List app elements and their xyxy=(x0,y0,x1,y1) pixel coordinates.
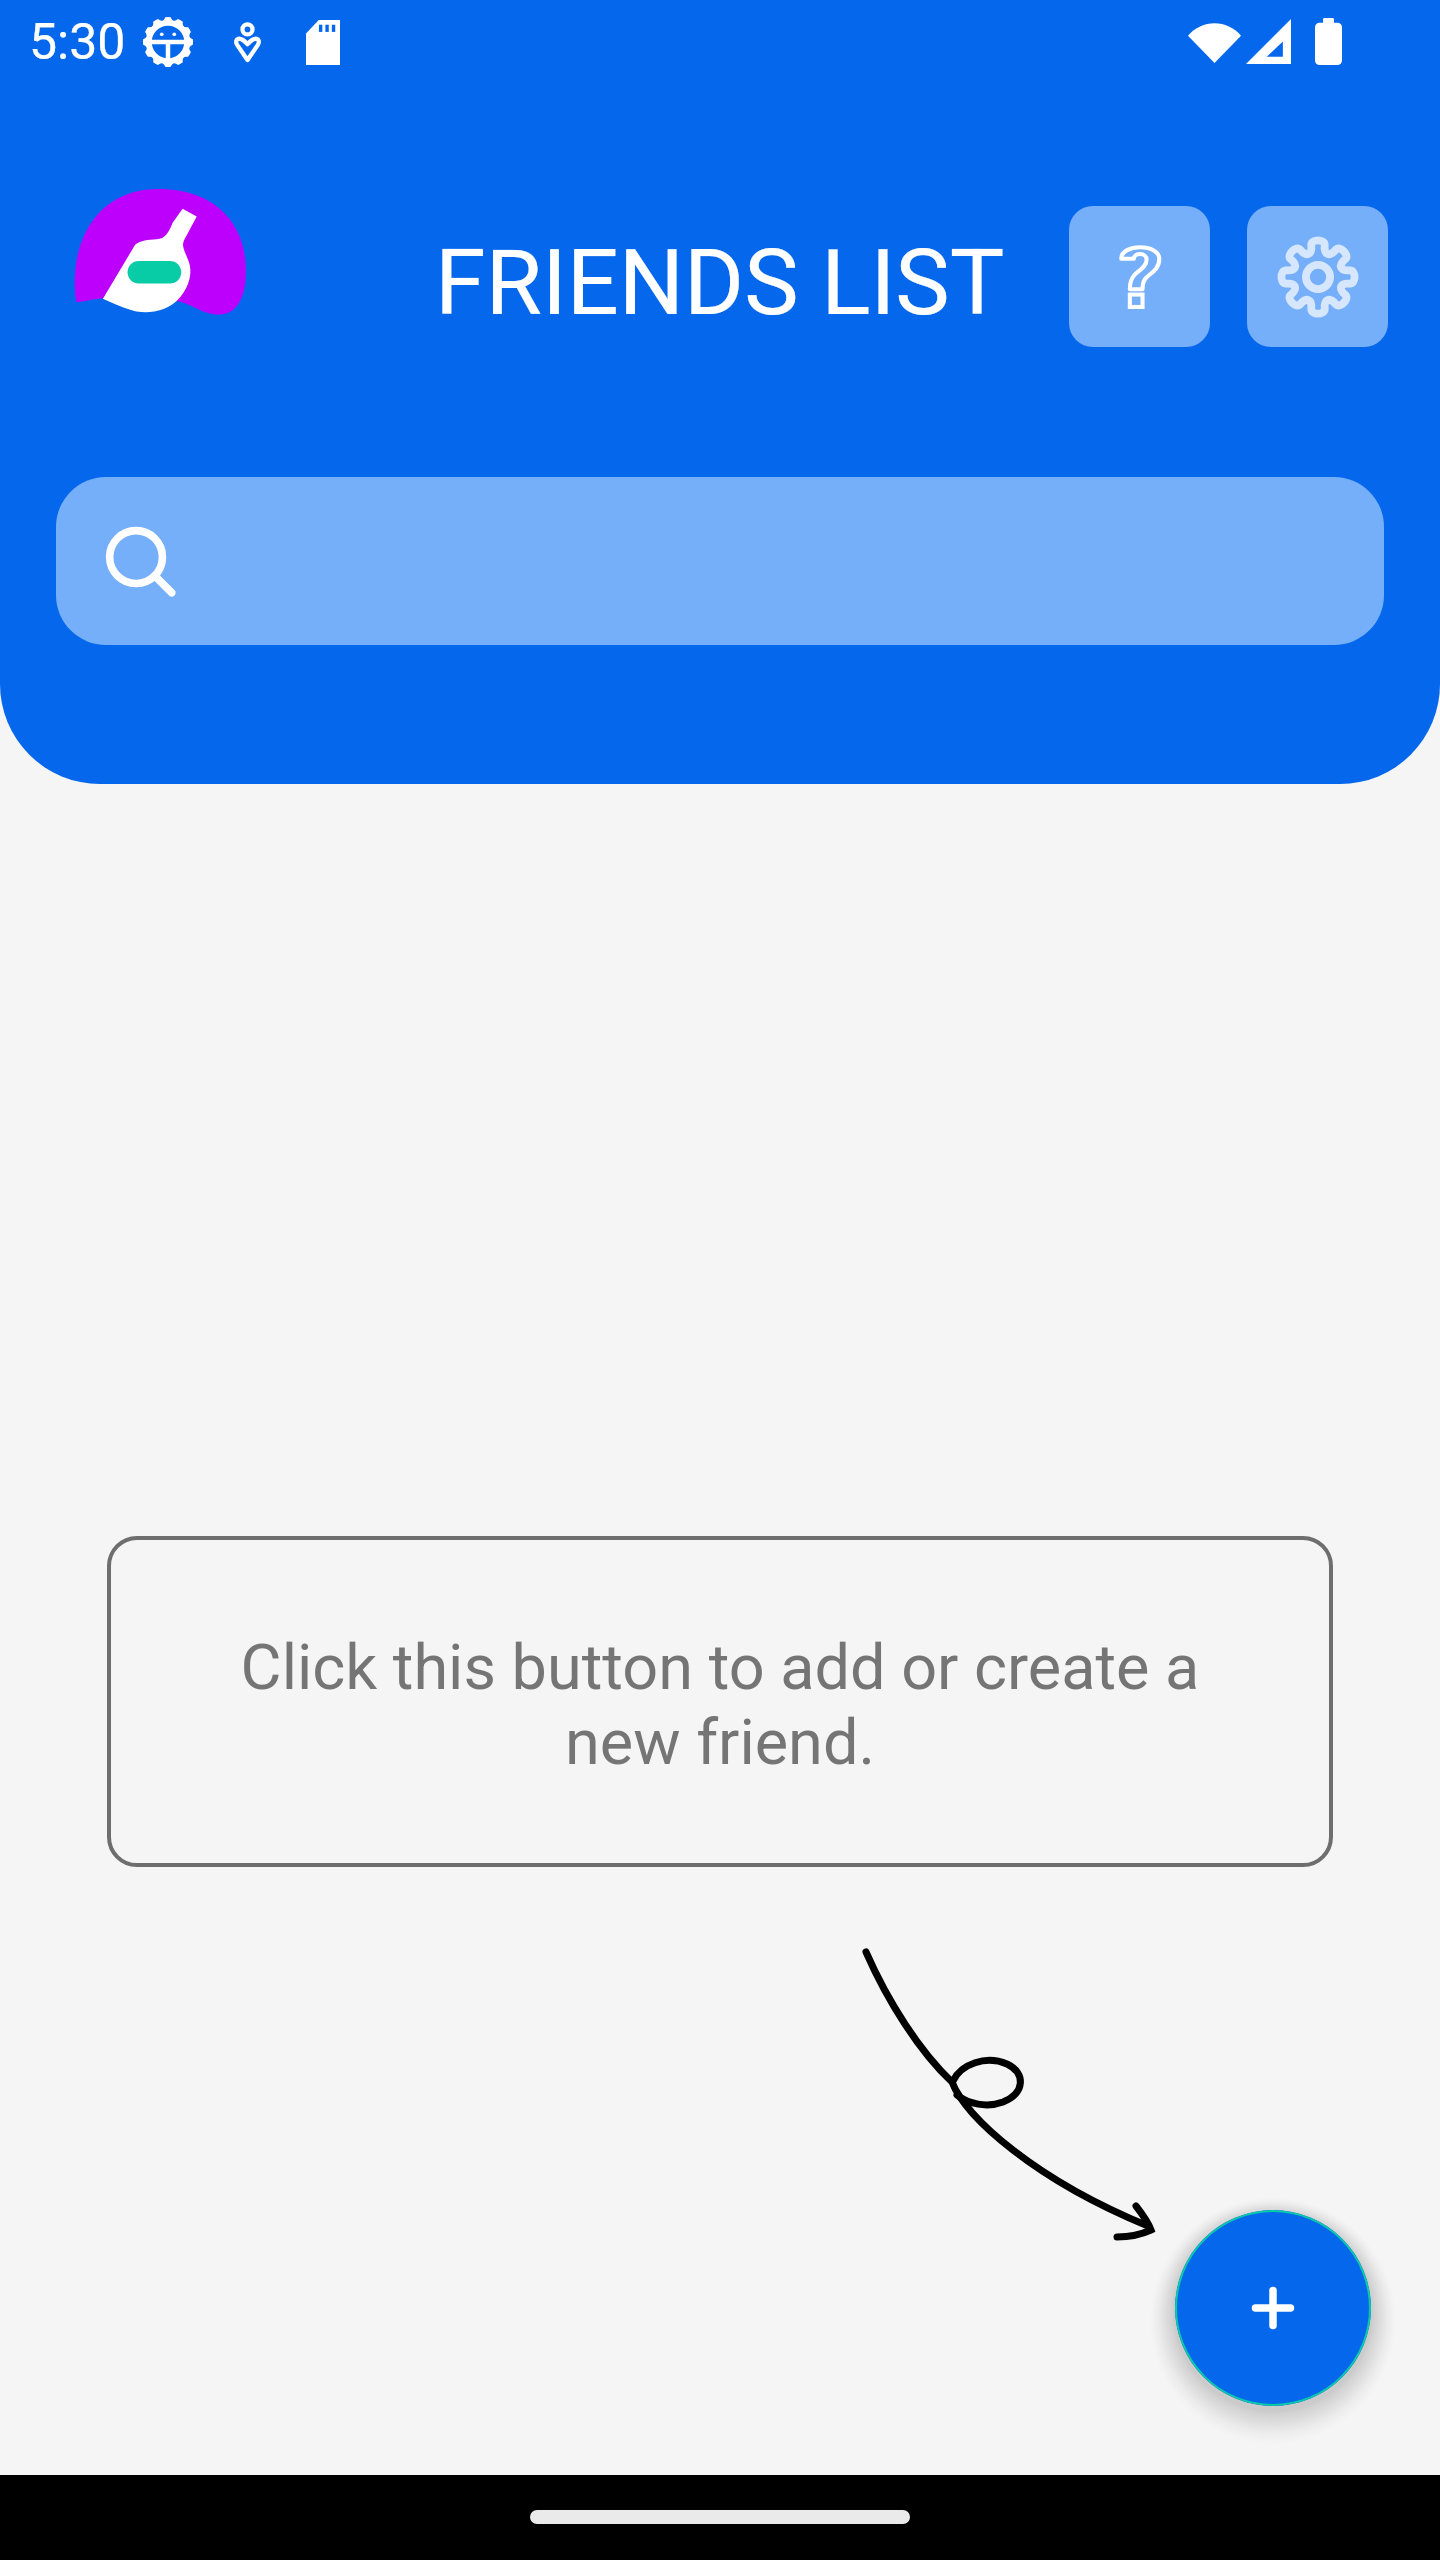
button[interactable]: Search friends xyxy=(56,477,1384,645)
staticText: Click this button to add or create a new… xyxy=(215,1631,1225,1779)
staticText: FRIENDS LIST xyxy=(435,229,1005,336)
button[interactable]: App logo xyxy=(70,189,246,317)
button[interactable]: Help xyxy=(1069,206,1210,347)
staticText: 5:30 xyxy=(29,13,126,72)
button[interactable]: Settings xyxy=(1247,206,1388,347)
button[interactable]: Add new friend xyxy=(1175,2210,1371,2406)
